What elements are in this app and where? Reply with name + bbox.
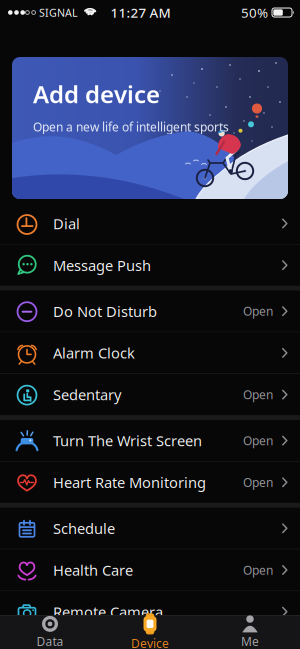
staticText: Open — [243, 474, 273, 490]
staticText: Open — [243, 562, 273, 578]
button[interactable]: Add device — [12, 57, 288, 199]
button[interactable]: Alarm Clock — [0, 332, 300, 373]
staticText: Add device — [33, 78, 160, 110]
staticText: Do Not Disturb — [53, 301, 157, 321]
staticText: Remote Camera — [53, 602, 163, 621]
staticText: Open — [243, 433, 273, 448]
staticText: Schedule — [53, 519, 115, 538]
staticText: Turn The Wrist Screen — [53, 431, 202, 450]
button[interactable]: Health Care — [0, 549, 300, 590]
staticText: Sedentary — [53, 385, 121, 404]
staticText: Open a new life of intelligent sports — [33, 119, 229, 135]
button[interactable]: Remote Camera — [0, 591, 300, 632]
button[interactable]: Heart Rate Monitoring — [0, 462, 300, 503]
button[interactable]: Do Not Disturb — [0, 291, 300, 332]
staticText: Dial — [53, 214, 80, 233]
button[interactable]: Me — [200, 616, 300, 649]
staticText: Message Push — [53, 255, 151, 275]
button[interactable]: Dial — [0, 203, 300, 244]
button[interactable]: Schedule — [0, 508, 300, 549]
staticText: 50% — [241, 4, 268, 21]
staticText: Heart Rate Monitoring — [53, 473, 206, 492]
button[interactable]: Device — [100, 616, 200, 649]
button[interactable]: Message Push — [0, 245, 300, 286]
staticText: 11:27 AM — [110, 4, 170, 21]
button[interactable]: Turn The Wrist Screen — [0, 420, 300, 461]
button[interactable]: Sedentary — [0, 374, 300, 415]
staticText: Open — [243, 303, 273, 319]
staticText: Me — [241, 633, 259, 649]
staticText: Alarm Clock — [53, 343, 135, 363]
button[interactable]: Data — [0, 616, 100, 649]
staticText: Health Care — [53, 560, 133, 580]
staticText: SIGNAL — [39, 5, 78, 20]
staticText: Data — [36, 633, 63, 649]
staticText: Open — [243, 387, 273, 402]
staticText: Device — [131, 635, 169, 649]
